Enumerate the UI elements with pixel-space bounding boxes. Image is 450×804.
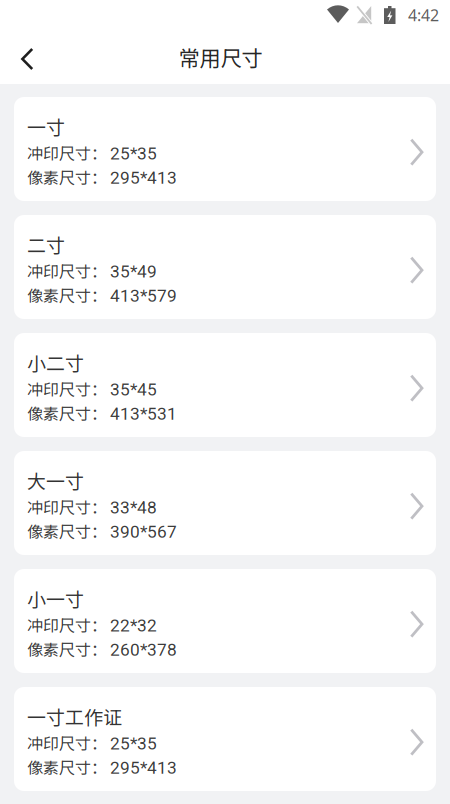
staticText: 冲印尺寸： bbox=[27, 731, 107, 754]
button[interactable]: 二寸 bbox=[14, 215, 436, 319]
staticText: 冲印尺寸： bbox=[27, 495, 107, 518]
staticText: 冲印尺寸： bbox=[27, 141, 107, 164]
staticText: 像素尺寸： bbox=[27, 519, 107, 542]
staticText: 二寸 bbox=[27, 231, 65, 258]
staticText: 一寸工作证 bbox=[27, 703, 122, 730]
staticText: 390*567 bbox=[110, 522, 177, 542]
staticText: 33*48 bbox=[110, 497, 157, 518]
staticText: 冲印尺寸： bbox=[27, 259, 107, 282]
staticText: 像素尺寸： bbox=[27, 637, 107, 660]
staticText: 常用尺寸 bbox=[178, 42, 262, 72]
staticText: 35*49 bbox=[110, 261, 157, 282]
button[interactable]: Back bbox=[0, 30, 54, 84]
staticText: 260*378 bbox=[110, 640, 177, 660]
staticText: 小一寸 bbox=[27, 585, 84, 612]
staticText: 小二寸 bbox=[27, 349, 84, 376]
staticText: 25*35 bbox=[110, 143, 157, 164]
staticText: 像素尺寸： bbox=[27, 401, 107, 424]
staticText: 413*579 bbox=[110, 286, 177, 306]
staticText: 像素尺寸： bbox=[27, 165, 107, 188]
staticText: 413*531 bbox=[110, 404, 177, 424]
staticText: 冲印尺寸： bbox=[27, 377, 107, 400]
staticText: 大一寸 bbox=[27, 467, 84, 494]
staticText: 像素尺寸： bbox=[27, 283, 107, 306]
staticText: 像素尺寸： bbox=[27, 755, 107, 778]
staticText: 35*45 bbox=[110, 379, 157, 400]
button[interactable]: 大一寸 bbox=[14, 451, 436, 555]
staticText: 22*32 bbox=[110, 615, 157, 636]
button[interactable]: 一寸工作证 bbox=[14, 687, 436, 791]
staticText: 295*413 bbox=[110, 168, 177, 188]
button[interactable]: 小二寸 bbox=[14, 333, 436, 437]
staticText: 一寸 bbox=[27, 113, 65, 140]
staticText: 295*413 bbox=[110, 758, 177, 778]
staticText: 4:42 bbox=[408, 4, 439, 26]
button[interactable]: 一寸 bbox=[14, 97, 436, 201]
staticText: 25*35 bbox=[110, 733, 157, 754]
staticText: 冲印尺寸： bbox=[27, 613, 107, 636]
button[interactable]: 小一寸 bbox=[14, 569, 436, 673]
